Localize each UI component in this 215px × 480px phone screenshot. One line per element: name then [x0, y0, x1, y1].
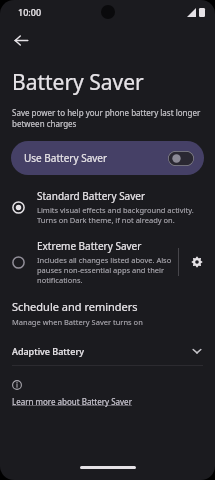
- button[interactable]: Back: [6, 25, 36, 55]
- button[interactable]: Standard Battery Saver: [0, 185, 215, 229]
- staticText: Schedule and reminders: [12, 299, 138, 314]
- staticText: Extreme Battery Saver: [37, 239, 142, 253]
- staticText: Includes all changes listed above. Also …: [37, 255, 178, 285]
- button[interactable]: Adaptive Battery: [0, 341, 215, 361]
- staticText: Manage when Battery Saver turns on: [12, 317, 143, 327]
- button[interactable]: Use Battery Saver: [11, 141, 204, 175]
- staticText: Battery Saver: [12, 68, 144, 97]
- button[interactable]: Extreme Battery Saver settings: [179, 244, 215, 280]
- button[interactable]: Extreme Battery Saver: [0, 235, 178, 289]
- staticText: Use Battery Saver: [24, 151, 108, 165]
- staticText: Limits visual effects and background act…: [37, 205, 203, 225]
- staticText: Save power to help your phone battery la…: [12, 107, 203, 129]
- staticText: Standard Battery Saver: [37, 189, 146, 203]
- button[interactable]: Learn more about Battery Saver: [12, 396, 132, 407]
- staticText: Adaptive Battery: [12, 345, 191, 357]
- staticText: Learn more about Battery Saver: [12, 396, 132, 407]
- staticText: 10:00: [18, 6, 42, 18]
